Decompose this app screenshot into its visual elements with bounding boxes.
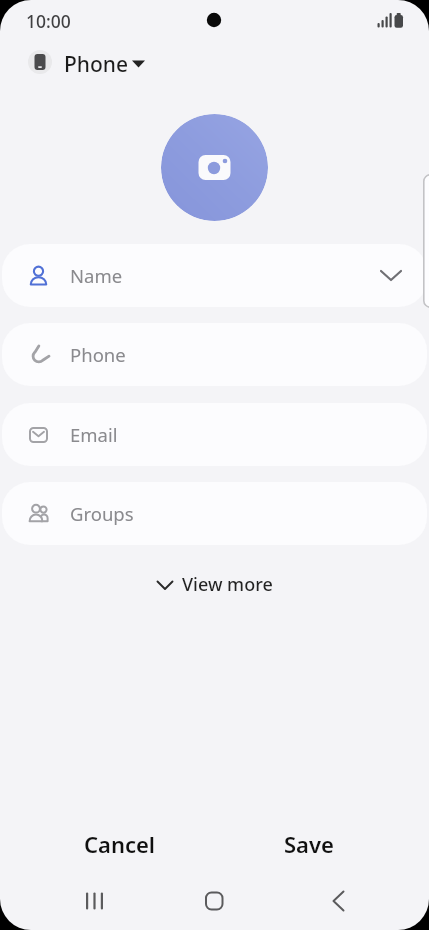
staticText: Groups — [70, 501, 134, 526]
staticText: Cancel — [84, 829, 156, 859]
staticText: Name — [70, 263, 123, 288]
staticText: Email — [70, 422, 118, 447]
staticText: Save — [284, 829, 334, 859]
staticText: 10:00 — [26, 9, 71, 33]
staticText: View more — [182, 572, 273, 597]
staticText: Phone — [70, 342, 126, 367]
staticText: Phone — [64, 50, 129, 79]
